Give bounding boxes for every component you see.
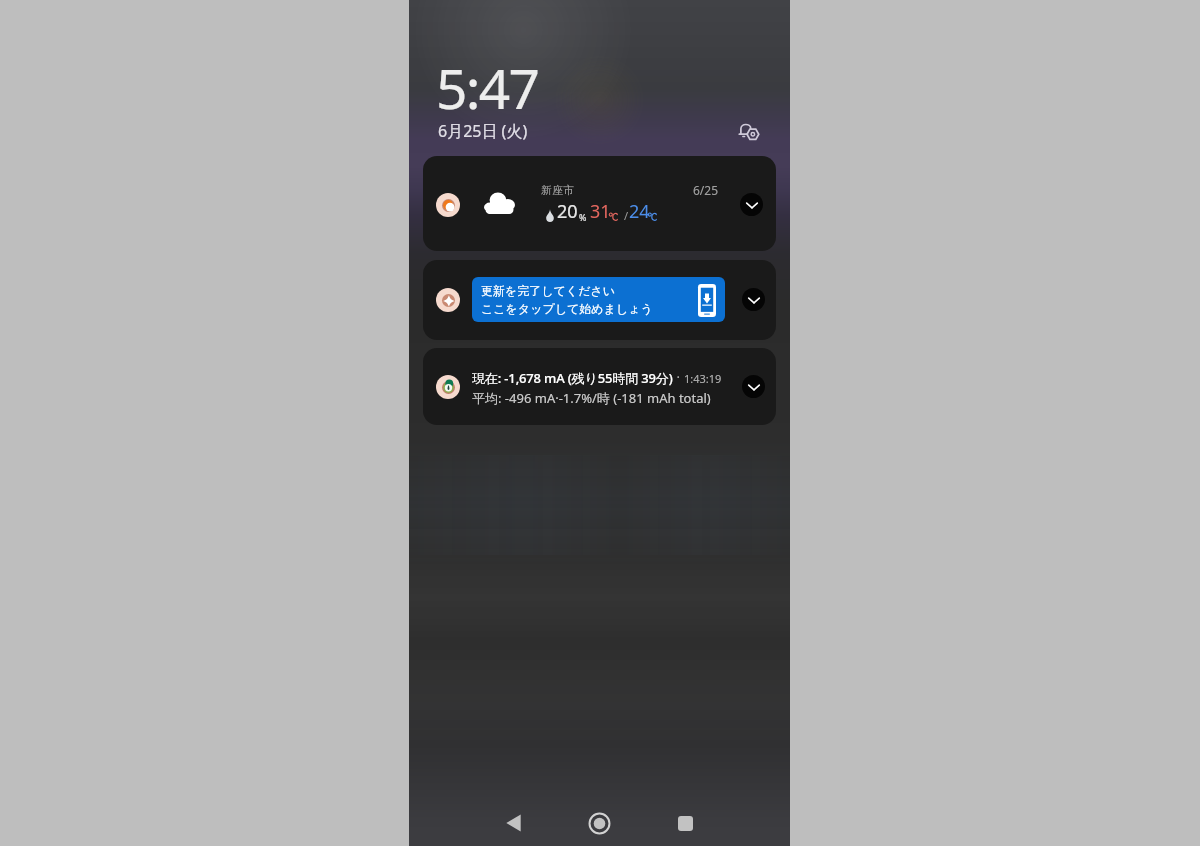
staticText: / [624, 208, 629, 223]
button[interactable]: Notification settings [735, 117, 763, 145]
button[interactable]: Back [489, 805, 537, 841]
staticText: 現在: -1,678 mA (残り55時間 39分) [472, 369, 673, 387]
button[interactable]: 更新を完了してください [423, 260, 776, 340]
staticText: ここをタップして始めましょう [481, 301, 653, 316]
staticText: 5:47 [436, 50, 539, 125]
staticText: 更新を完了してください [481, 283, 615, 298]
staticText: 6月25日 (火) [438, 120, 528, 142]
button[interactable]: 更新を完了してください [472, 277, 725, 322]
staticText: 平均: -496 mA·-1.7%/時 (-181 mAh total) [472, 389, 711, 407]
button[interactable]: Home [575, 805, 623, 841]
button[interactable]: Recent apps [661, 805, 709, 841]
button[interactable]: Expand [740, 193, 763, 216]
button[interactable]: 新座市 [423, 156, 776, 251]
staticText: 31 [590, 199, 611, 224]
staticText: 1:43:19 [684, 371, 722, 386]
staticText: 新座市 [541, 183, 574, 197]
button[interactable]: 現在: -1,678 mA (残り55時間 39分) [423, 348, 776, 425]
button[interactable]: Expand [742, 288, 765, 311]
staticText: 6/25 [693, 182, 719, 198]
staticText: 24 [629, 199, 650, 224]
button[interactable]: Expand [742, 375, 765, 398]
staticText: · [673, 368, 684, 386]
staticText: 20 [557, 199, 578, 224]
staticText: % [579, 211, 587, 223]
